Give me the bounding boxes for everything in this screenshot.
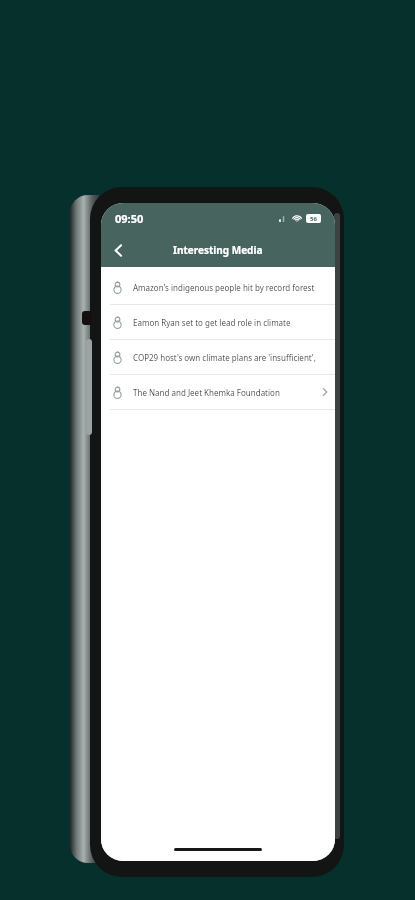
button[interactable]: Back	[101, 233, 135, 267]
button[interactable]: Amazon's indigenous people hit by record…	[101, 270, 335, 304]
button[interactable]: Eamon Ryan set to get lead role in clima…	[101, 305, 335, 339]
staticText: Eamon Ryan set to get lead role in clima…	[133, 317, 320, 328]
staticText: Amazon's indigenous people hit by record…	[133, 282, 320, 293]
staticText: 56	[310, 215, 317, 223]
staticText: Interesting Media	[173, 243, 263, 257]
button[interactable]: The Nand and Jeet Khemka Foundation	[101, 375, 335, 409]
staticText: 09:50	[115, 211, 144, 226]
staticText: The Nand and Jeet Khemka Foundation	[133, 387, 320, 398]
staticText: COP29 host's own climate plans are 'insu…	[133, 352, 320, 363]
button[interactable]: COP29 host's own climate plans are 'insu…	[101, 340, 335, 374]
